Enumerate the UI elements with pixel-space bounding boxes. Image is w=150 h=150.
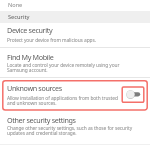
staticText: Find My Mobile [7, 52, 54, 62]
staticText: Device security [7, 25, 53, 35]
staticText: Unknown sources [7, 83, 62, 93]
button[interactable]: Unknown sources [0, 78, 150, 113]
button[interactable]: Other security settings [0, 113, 150, 143]
staticText: None [8, 1, 23, 9]
button[interactable]: None [0, 0, 150, 11]
staticText: Protect your device from malicious apps. [7, 37, 96, 44]
staticText: Change other security settings, such as … [7, 125, 133, 137]
button[interactable]: Unknown sources switch, off [121, 85, 145, 104]
button[interactable]: Find My Mobile [0, 48, 150, 76]
staticText: Allow installation of applications from … [7, 95, 118, 107]
staticText: Locate and control your device remotely … [7, 62, 120, 74]
staticText: Other security settings [7, 115, 76, 125]
staticText: Security [8, 13, 30, 21]
button[interactable]: Device security [0, 23, 150, 47]
